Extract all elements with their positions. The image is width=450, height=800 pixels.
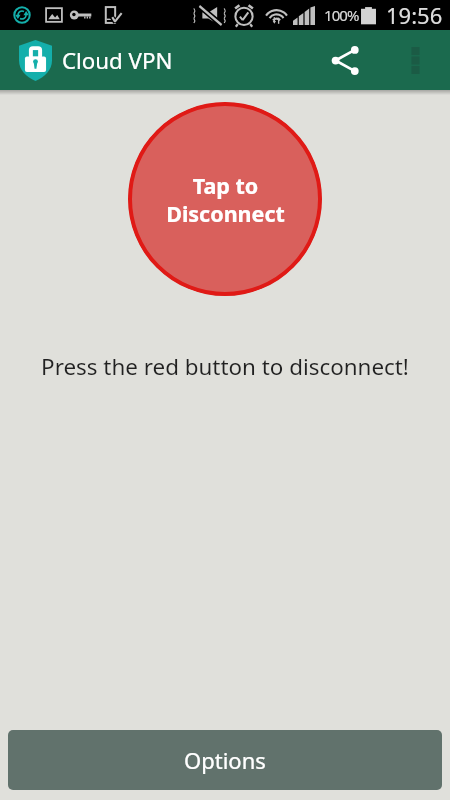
staticText: 19:56: [386, 0, 443, 30]
button[interactable]: Options: [8, 730, 442, 790]
button[interactable]: More options: [380, 30, 450, 90]
staticText: Tap to Disconnect: [166, 171, 285, 228]
staticText: Cloud VPN: [62, 45, 173, 75]
button[interactable]: Tap to Disconnect: [128, 102, 322, 296]
staticText: 100%: [324, 5, 359, 25]
staticText: Press the red button to disconnect!: [41, 351, 409, 382]
staticText: Options: [184, 745, 266, 775]
button[interactable]: Share: [310, 30, 380, 90]
